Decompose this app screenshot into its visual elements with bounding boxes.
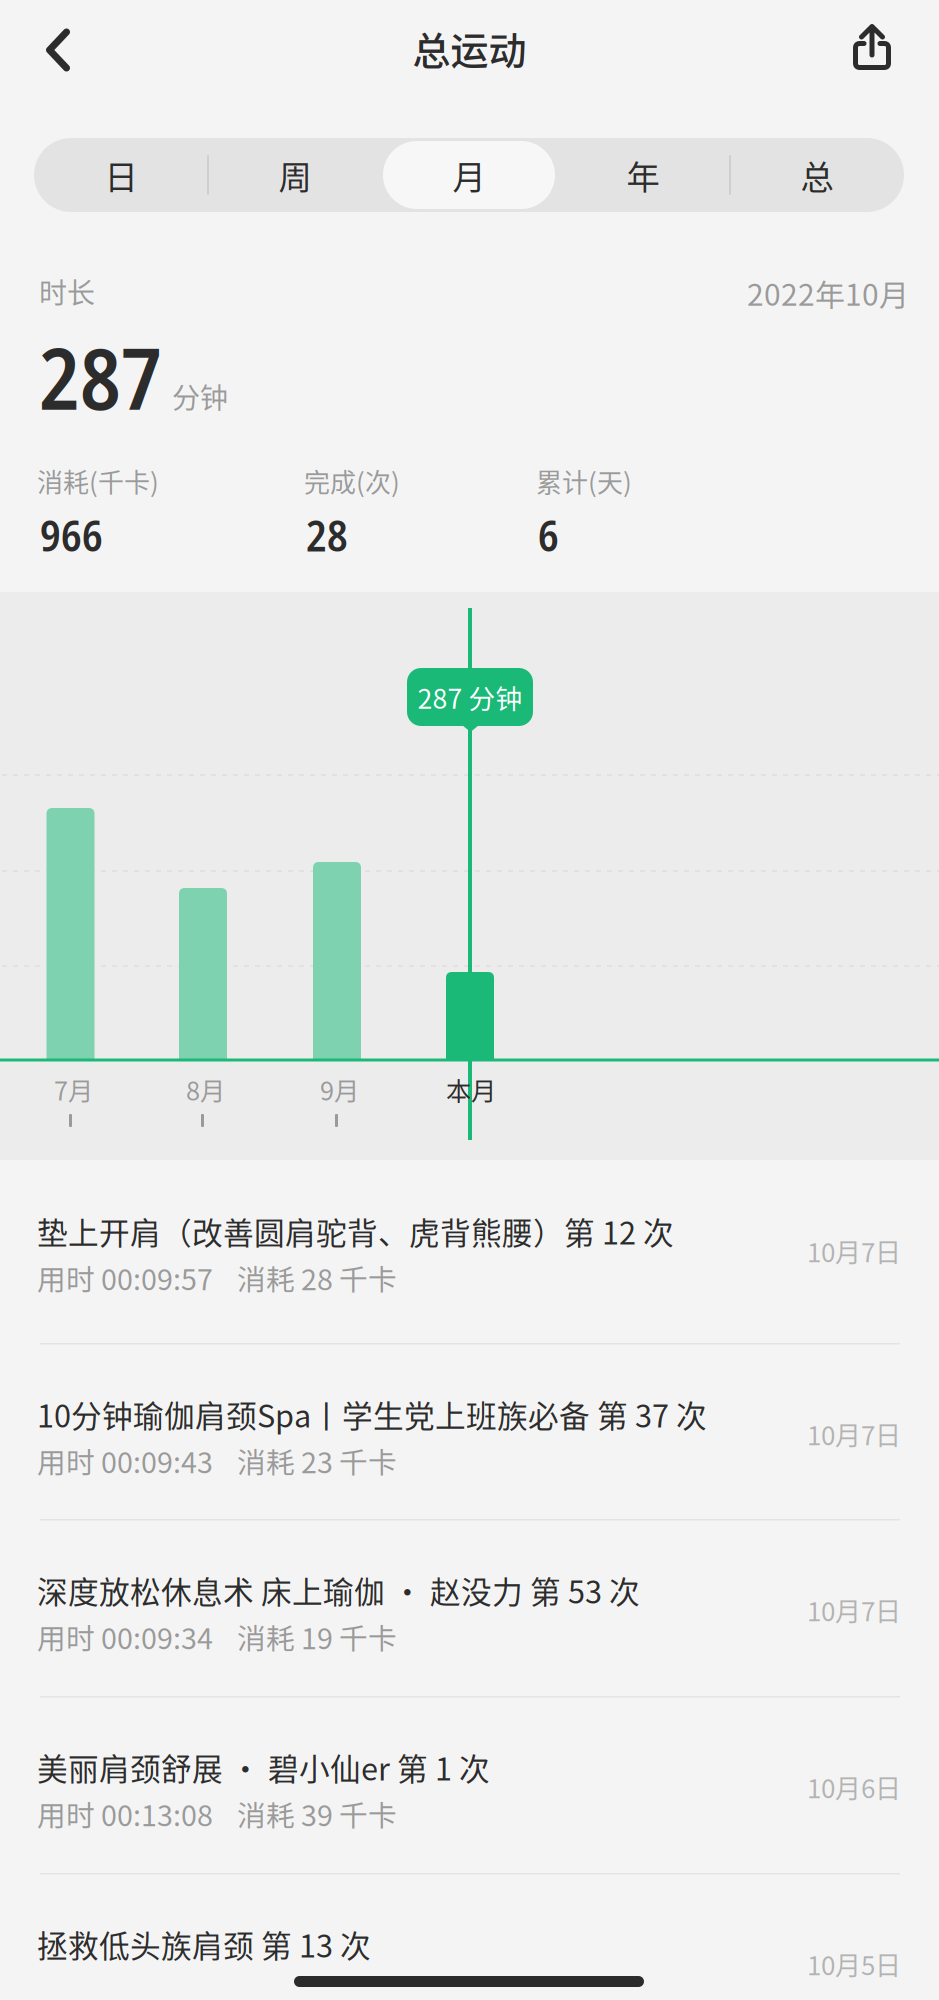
staticText: 9月 (320, 1071, 359, 1108)
staticText: 28 (306, 506, 348, 564)
staticText: 10月7日 (807, 1415, 901, 1453)
button[interactable]: 年 (556, 138, 730, 212)
staticText: 月 (452, 151, 485, 199)
staticText: 10月6日 (807, 1768, 901, 1806)
staticText: 本月 (446, 1071, 496, 1108)
staticText: 消耗(千卡) (37, 462, 159, 500)
staticText: 时长 (39, 271, 95, 311)
staticText: 10月7日 (807, 1232, 901, 1270)
staticText: 7月 (54, 1071, 93, 1108)
button[interactable]: 月 (382, 138, 556, 212)
staticText: 周 (278, 151, 311, 199)
button[interactable]: 总 (730, 138, 904, 212)
staticText: 用时 00:09:34 消耗 19 千卡 (37, 1616, 397, 1657)
staticText: 年 (626, 151, 659, 199)
staticText: 10月5日 (807, 1945, 901, 1983)
button[interactable]: 分享 (848, 23, 896, 71)
staticText: 8月 (186, 1071, 225, 1108)
staticText: 287 分钟 (417, 678, 522, 716)
staticText: 分钟 (172, 376, 228, 416)
staticText: 拯救低头族肩颈 第 13 次 (37, 1922, 371, 1966)
button[interactable]: 垫上开肩（改善圆肩驼背、虎背熊腰）第 12 次 (0, 1160, 939, 1337)
button[interactable]: 日 (34, 138, 208, 212)
staticText: 累计(天) (536, 462, 632, 500)
staticText: 美丽肩颈舒展 · 碧小仙er 第 1 次 (37, 1745, 490, 1789)
staticText: 用时 00:09:43 消耗 23 千卡 (37, 1440, 397, 1481)
button[interactable]: 返回 (34, 26, 82, 74)
staticText: 2022年10月 (747, 271, 909, 314)
staticText: 287 (39, 320, 162, 434)
staticText: 总 (800, 151, 833, 199)
button[interactable]: 10分钟瑜伽肩颈Spa丨学生党上班族必备 第 37 次 (0, 1343, 939, 1520)
staticText: 总运动 (412, 20, 526, 75)
staticText: 完成(次) (304, 462, 400, 500)
staticText: 日 (104, 151, 137, 199)
button[interactable]: 拯救低头族肩颈 第 13 次 (0, 1873, 939, 2000)
button[interactable]: 周 (208, 138, 382, 212)
button[interactable]: 深度放松休息术 床上瑜伽 · 赵没力 第 53 次 (0, 1519, 939, 1696)
staticText: 深度放松休息术 床上瑜伽 · 赵没力 第 53 次 (37, 1568, 640, 1612)
staticText: 垫上开肩（改善圆肩驼背、虎背熊腰）第 12 次 (37, 1209, 674, 1253)
staticText: 6 (538, 506, 559, 564)
staticText: 10分钟瑜伽肩颈Spa丨学生党上班族必备 第 37 次 (37, 1392, 707, 1436)
button[interactable]: 美丽肩颈舒展 · 碧小仙er 第 1 次 (0, 1696, 939, 1873)
staticText: 966 (40, 506, 103, 564)
staticText: 用时 00:13:08 消耗 39 千卡 (37, 1793, 397, 1834)
staticText: 10月7日 (807, 1591, 901, 1629)
staticText: 用时 00:09:57 消耗 28 千卡 (37, 1257, 397, 1298)
